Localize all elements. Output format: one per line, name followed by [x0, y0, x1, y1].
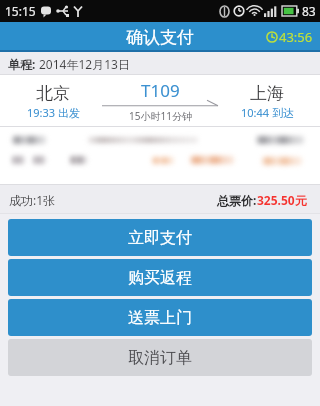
staticText: 325.50元 — [257, 192, 307, 208]
button[interactable]: 立即支付 — [8, 219, 312, 256]
staticText: 15小时11分钟 — [129, 109, 192, 123]
staticText: 北京 — [36, 83, 70, 104]
button[interactable]: 购买返程 — [8, 259, 312, 296]
staticText: 上海 — [250, 83, 284, 104]
staticText: 立即支付 — [128, 228, 192, 248]
staticText: 送票上门 — [128, 308, 192, 328]
staticText: 83 — [302, 3, 316, 19]
button[interactable]: 取消订单 — [8, 339, 312, 376]
staticText: 购买返程 — [128, 268, 192, 288]
staticText: T109 — [141, 79, 180, 102]
button[interactable]: 送票上门 — [8, 299, 312, 336]
staticText: 2014年12月13日 — [39, 56, 130, 72]
staticText: 单程: — [8, 56, 36, 72]
staticText: 19:33 出发 — [27, 105, 80, 120]
button[interactable]: Remaining time — [266, 28, 313, 46]
staticText: 10:44 到达 — [241, 105, 294, 120]
staticText: 15:15 — [5, 3, 36, 19]
staticText: 取消订单 — [128, 348, 192, 368]
staticText: 43:56 — [279, 28, 313, 46]
staticText: 确认支付 — [126, 27, 194, 48]
staticText: 成功:1张 — [9, 192, 56, 208]
staticText: 总票价: — [217, 192, 257, 208]
